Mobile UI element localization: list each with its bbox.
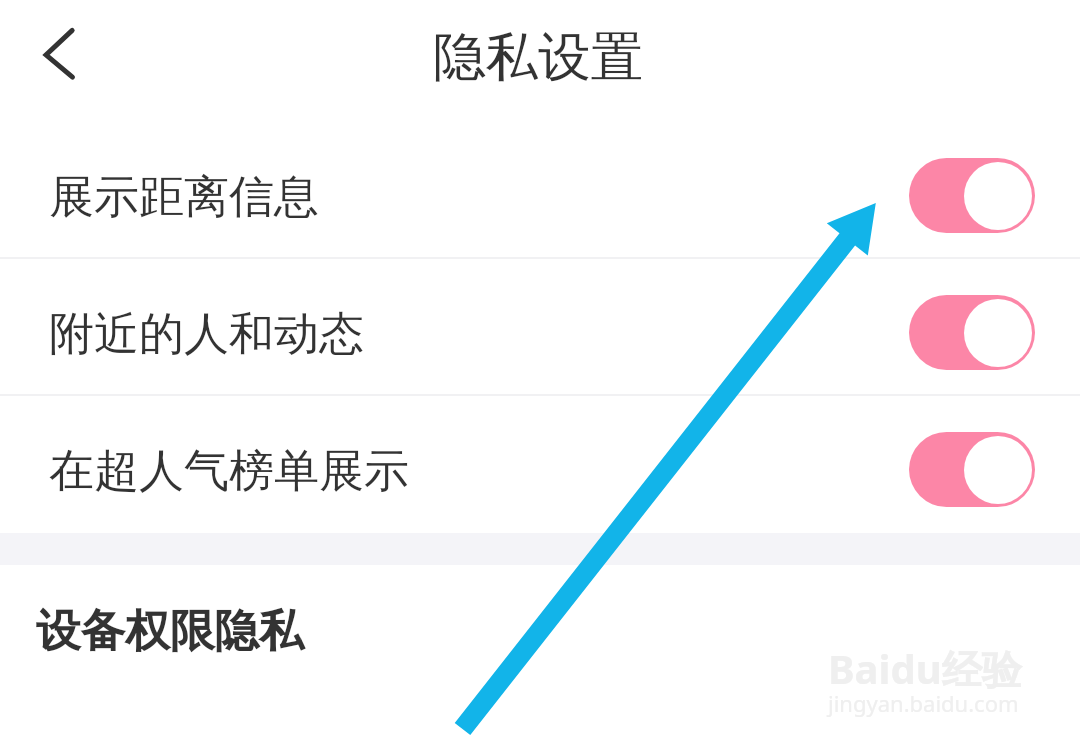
staticText: Baidu经验 [828,641,1022,696]
staticText: 隐私设置 [433,24,644,90]
staticText: 附近的人和动态 [49,306,364,363]
button[interactable]: 在超人气榜单展示 开关 [909,432,1035,507]
staticText: 在超人气榜单展示 [49,443,409,500]
staticText: 设备权限隐私 [36,603,304,659]
staticText: 展示距离信息 [49,169,319,226]
button[interactable]: 展示距离信息 [0,126,1080,263]
button[interactable]: 附近的人和动态 [0,263,1080,400]
button[interactable]: 展示距离信息 开关 [909,158,1035,233]
button[interactable]: 设备权限隐私 [0,565,1080,697]
button[interactable]: 附近的人和动态 开关 [909,295,1035,370]
button[interactable]: 在超人气榜单展示 [0,400,1080,537]
staticText: jingyan.baidu.com [828,688,1019,718]
button[interactable]: Back [18,16,94,92]
